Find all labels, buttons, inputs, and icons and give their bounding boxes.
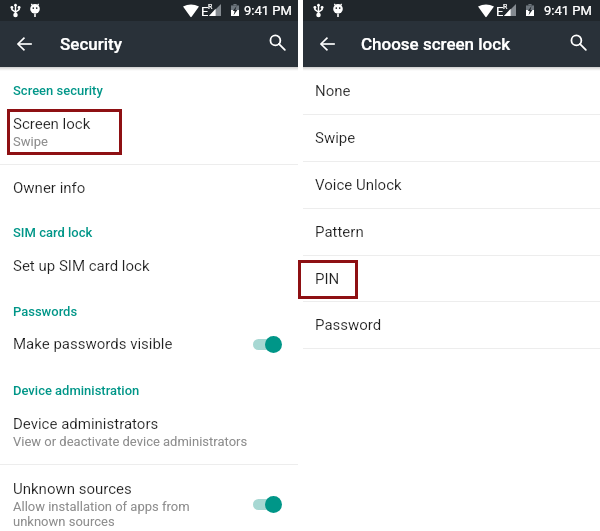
button[interactable]: Device administrators	[0, 415, 298, 449]
button[interactable]: Pattern	[303, 208, 600, 255]
staticText: Security	[60, 34, 123, 54]
button[interactable]: Make passwords visible	[0, 329, 298, 359]
button[interactable]: Search	[558, 22, 598, 62]
button[interactable]: PIN	[303, 255, 600, 302]
staticText: E	[496, 4, 504, 19]
staticText: Set up SIM card lock	[13, 257, 150, 275]
staticText: 9:41 PM	[544, 3, 592, 18]
staticText: E	[201, 4, 209, 19]
staticText: 9:41 PM	[244, 3, 292, 18]
staticText: R	[503, 3, 508, 11]
button[interactable]: Set up SIM card lock	[0, 257, 298, 275]
button[interactable]: Toggle	[253, 330, 298, 358]
staticText: Pattern	[315, 223, 364, 241]
staticText: Device administrators	[13, 415, 159, 433]
button[interactable]: Navigate up	[307, 24, 347, 64]
staticText: PIN	[315, 270, 340, 288]
staticText: SIM card lock	[13, 225, 93, 240]
staticText: None	[315, 82, 351, 100]
button[interactable]: Screen lock	[0, 115, 298, 149]
button[interactable]: Search	[257, 22, 297, 62]
staticText: Voice Unlock	[315, 176, 402, 194]
staticText: R	[208, 3, 213, 11]
button[interactable]: Navigate up	[4, 24, 44, 64]
staticText: Allow installation of apps from	[13, 499, 190, 514]
button[interactable]: Swipe	[303, 114, 600, 161]
button[interactable]: Toggle	[253, 490, 298, 518]
staticText: Device administration	[13, 383, 140, 398]
staticText: Owner info	[13, 179, 86, 197]
staticText: Choose screen lock	[361, 34, 511, 54]
staticText: unknown sources	[13, 514, 115, 529]
button[interactable]: Unknown sources	[0, 480, 298, 529]
button[interactable]: None	[303, 67, 600, 114]
staticText: Make passwords visible	[13, 335, 173, 353]
staticText: Swipe	[315, 129, 356, 147]
staticText: Unknown sources	[13, 480, 132, 498]
staticText: Swipe	[13, 134, 48, 149]
button[interactable]: Password	[303, 301, 600, 348]
staticText: Screen lock	[13, 115, 91, 133]
staticText: View or deactivate device administrators	[13, 434, 248, 449]
staticText: Passwords	[13, 304, 78, 319]
button[interactable]: Owner info	[0, 179, 298, 197]
button[interactable]: Voice Unlock	[303, 161, 600, 208]
staticText: Screen security	[13, 83, 103, 98]
staticText: Password	[315, 316, 382, 334]
